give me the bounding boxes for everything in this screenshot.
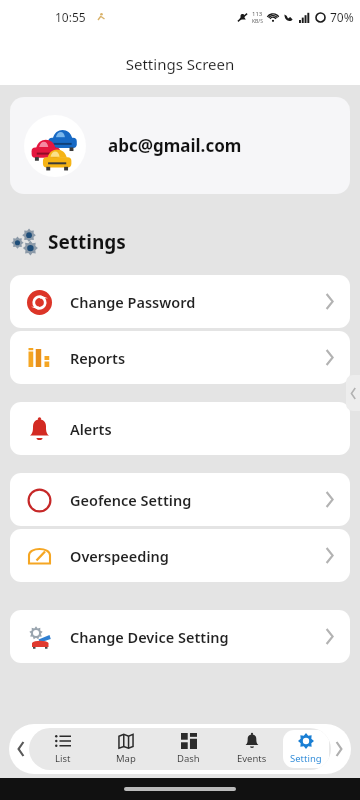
staticText: Reports — [70, 348, 126, 368]
staticText: abc@gmail.com — [108, 134, 242, 157]
button[interactable]: Change Password — [10, 275, 350, 328]
staticText: Alerts — [70, 419, 112, 439]
staticText: 10:55 — [55, 9, 86, 25]
staticText: Dash — [177, 752, 200, 765]
staticText: 70% — [330, 9, 354, 25]
staticText: Change Password — [70, 292, 196, 312]
button[interactable]: Geofence Setting — [10, 473, 350, 526]
button[interactable]: abc@gmail.com — [10, 97, 350, 194]
button[interactable]: Events — [220, 730, 283, 768]
staticText: Events — [237, 752, 267, 765]
staticText: List — [55, 752, 71, 765]
other: Previous — [17, 742, 25, 756]
staticText: Setting — [290, 752, 322, 765]
button[interactable]: Reports — [10, 331, 350, 384]
staticText: Map — [116, 752, 136, 765]
staticText: Settings Screen — [0, 54, 360, 74]
other: Next — [335, 742, 343, 756]
staticText: KB/S — [252, 18, 263, 25]
button[interactable]: Open panel — [346, 375, 360, 411]
staticText: Overspeeding — [70, 546, 169, 566]
button[interactable]: Change Device Setting — [10, 610, 350, 663]
button[interactable]: List — [31, 730, 94, 768]
staticText: Geofence Setting — [70, 490, 192, 510]
button[interactable]: Map — [94, 730, 157, 768]
staticText: 113 — [252, 10, 263, 18]
button[interactable]: Overspeeding — [10, 529, 350, 582]
staticText: Settings — [48, 229, 126, 255]
button[interactable]: Setting — [283, 730, 329, 768]
staticText: Change Device Setting — [70, 627, 229, 647]
button[interactable]: Alerts — [10, 402, 350, 455]
button[interactable]: Dash — [157, 730, 220, 768]
